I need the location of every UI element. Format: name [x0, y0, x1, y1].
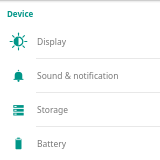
staticText: Storage: [37, 104, 69, 116]
staticText: Device: [7, 8, 34, 19]
staticText: Sound & notification: [37, 70, 119, 82]
button[interactable]: Display: [0, 25, 160, 58]
button[interactable]: Sound & notification: [0, 59, 160, 92]
button[interactable]: Storage: [0, 93, 160, 126]
staticText: Battery: [37, 138, 67, 150]
button[interactable]: Battery: [0, 127, 160, 160]
staticText: Display: [37, 36, 66, 48]
